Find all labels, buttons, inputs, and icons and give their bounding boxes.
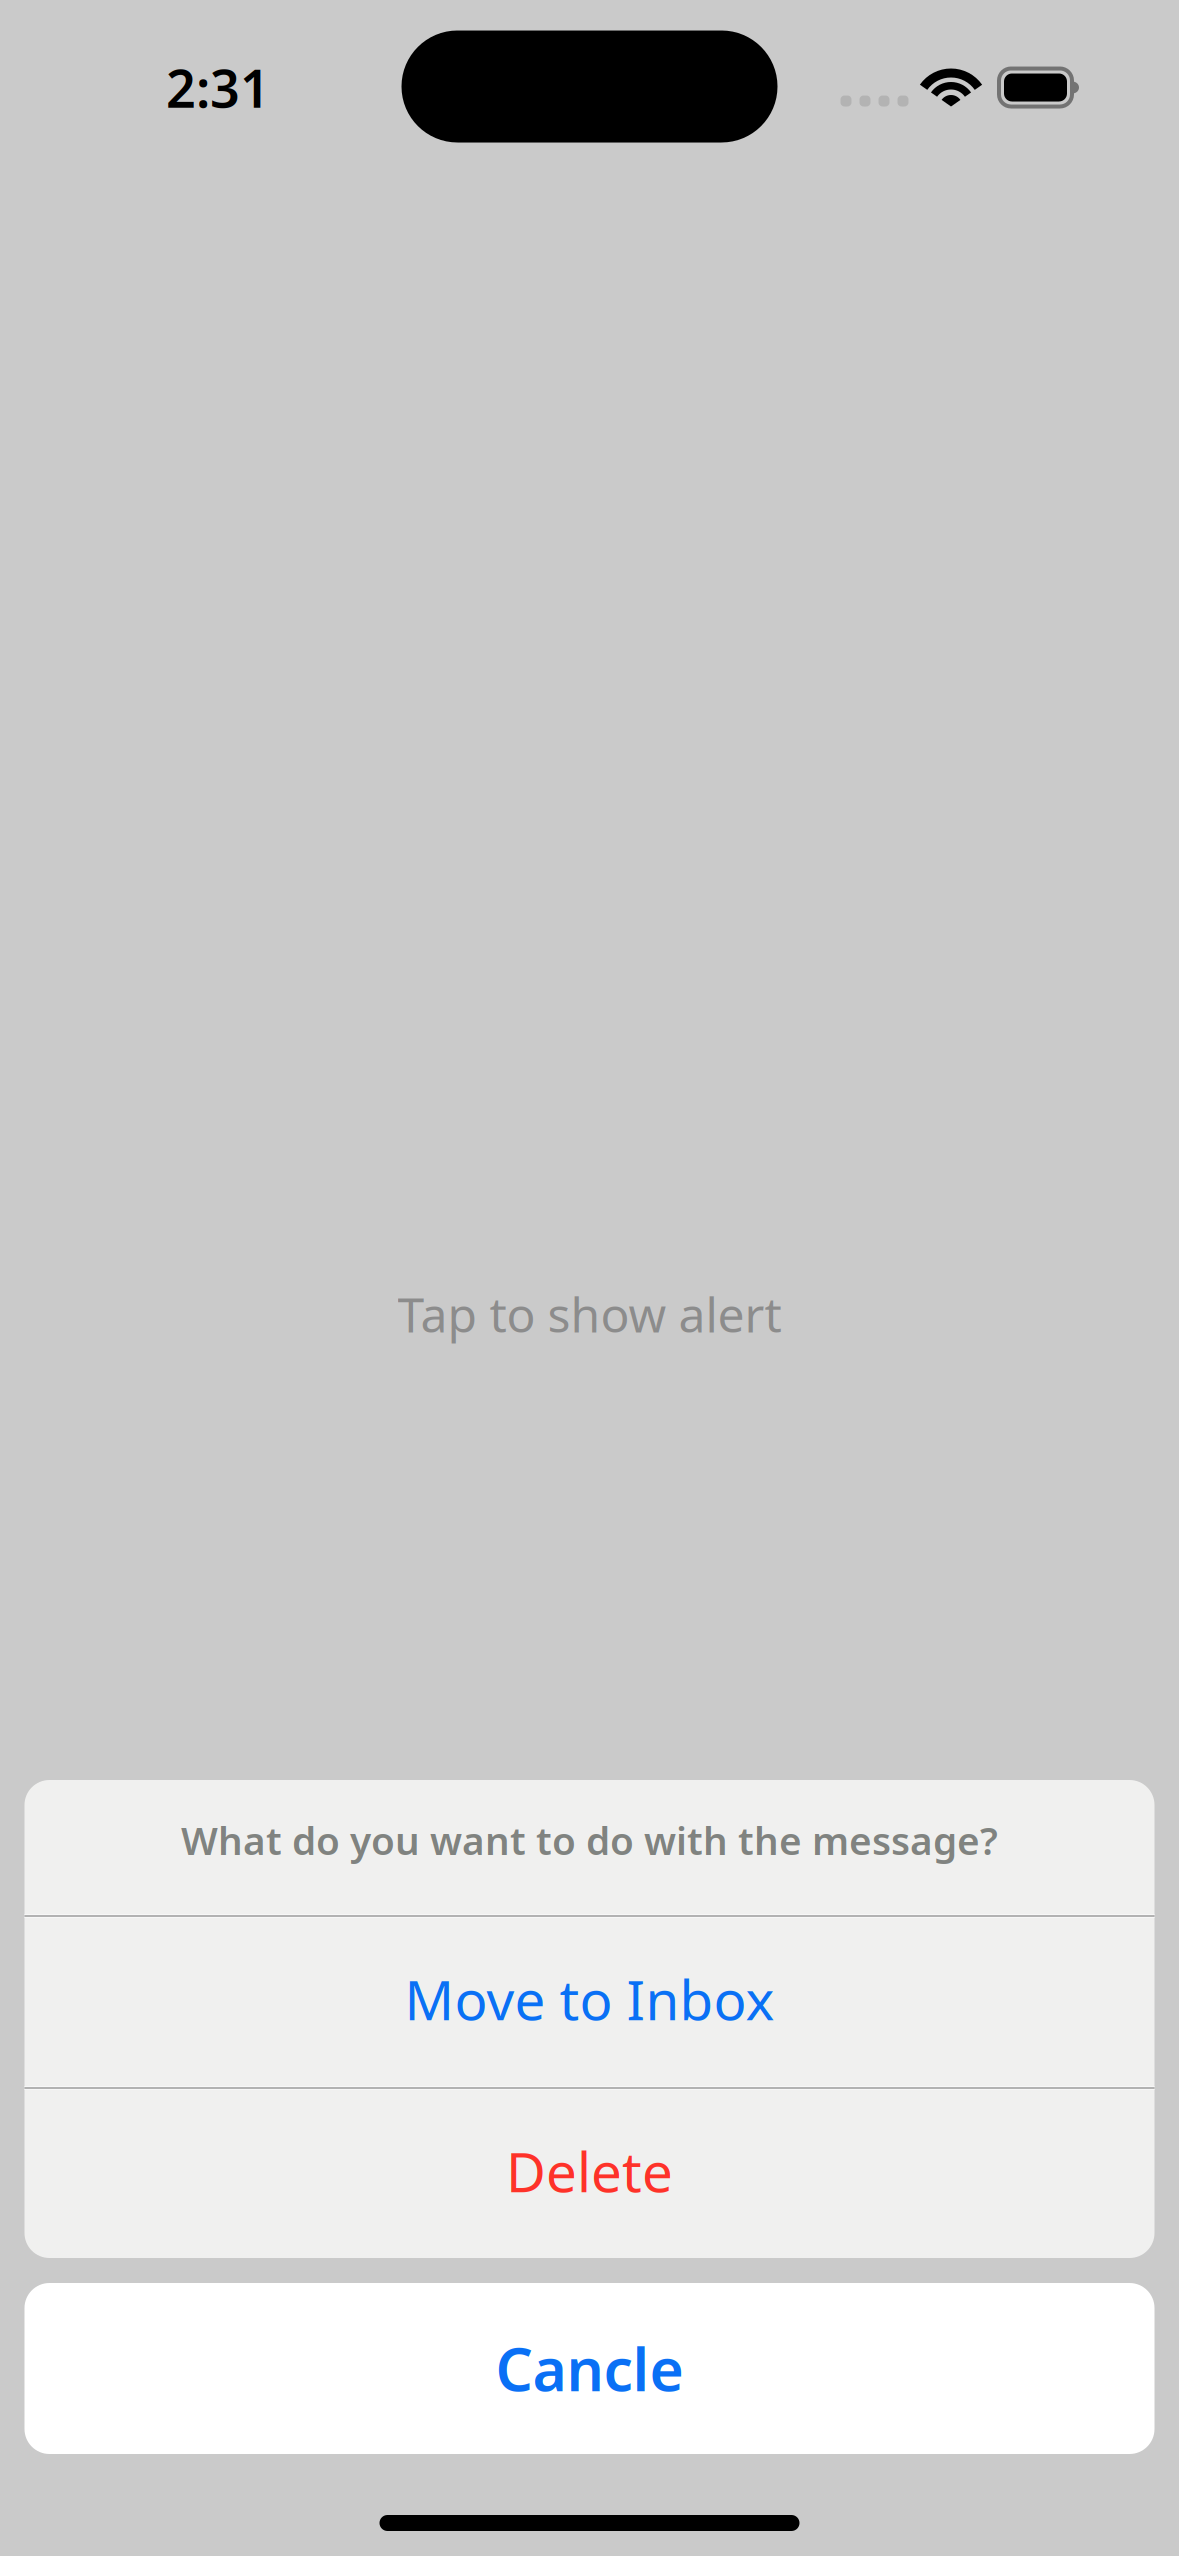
staticText: Cancle	[495, 2329, 683, 2407]
button[interactable]: Delete	[24, 2090, 1154, 2258]
button[interactable]: Tap to show alert	[0, 1288, 1179, 1340]
staticText: Move to Inbox	[404, 1963, 774, 2035]
button[interactable]: Cancle	[24, 2283, 1154, 2454]
staticText: Tap to show alert	[397, 1282, 781, 1346]
staticText: What do you want to do with the message?	[181, 1814, 998, 1866]
button[interactable]: Move to Inbox	[24, 1918, 1154, 2086]
staticText: Delete	[506, 2135, 673, 2207]
staticText: 2:31	[166, 53, 270, 122]
